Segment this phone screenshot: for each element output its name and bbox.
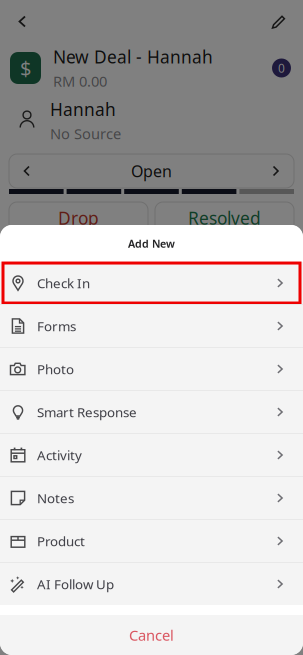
staticText: Open [131,160,172,182]
staticText: Drop [58,206,99,229]
staticText: Forms [37,317,76,335]
button[interactable]: Check In [0,262,303,304]
staticText: 0 [278,60,285,76]
staticText: RM 0.00 [53,71,107,91]
button[interactable]: Drop [9,202,148,234]
button[interactable]: Notes [0,477,303,519]
staticText: Hannah [50,98,116,121]
staticText: Resolved [188,206,261,229]
staticText: Product [37,532,85,550]
button[interactable]: Edit [262,5,295,38]
staticText: Smart Response [37,403,137,421]
button[interactable]: Photo [0,348,303,390]
button[interactable]: Product [0,520,303,562]
staticText: $ [20,55,31,81]
button[interactable]: Back [8,5,37,38]
button[interactable]: Smart Response [0,391,303,433]
staticText: Cancel [129,625,174,645]
staticText: Photo [37,360,74,378]
staticText: Add New [128,236,175,251]
staticText: Check In [37,274,90,292]
button[interactable]: AI Follow Up [0,563,303,605]
staticText: Notes [37,489,74,507]
button[interactable]: Activity [0,434,303,476]
button[interactable]: Forms [0,305,303,347]
staticText: Activity [37,446,82,464]
button[interactable]: Resolved [155,202,294,234]
staticText: No Source [50,124,121,143]
staticText: New Deal - Hannah [53,45,213,68]
button[interactable]: Cancel [0,615,303,655]
staticText: AI Follow Up [37,575,114,593]
